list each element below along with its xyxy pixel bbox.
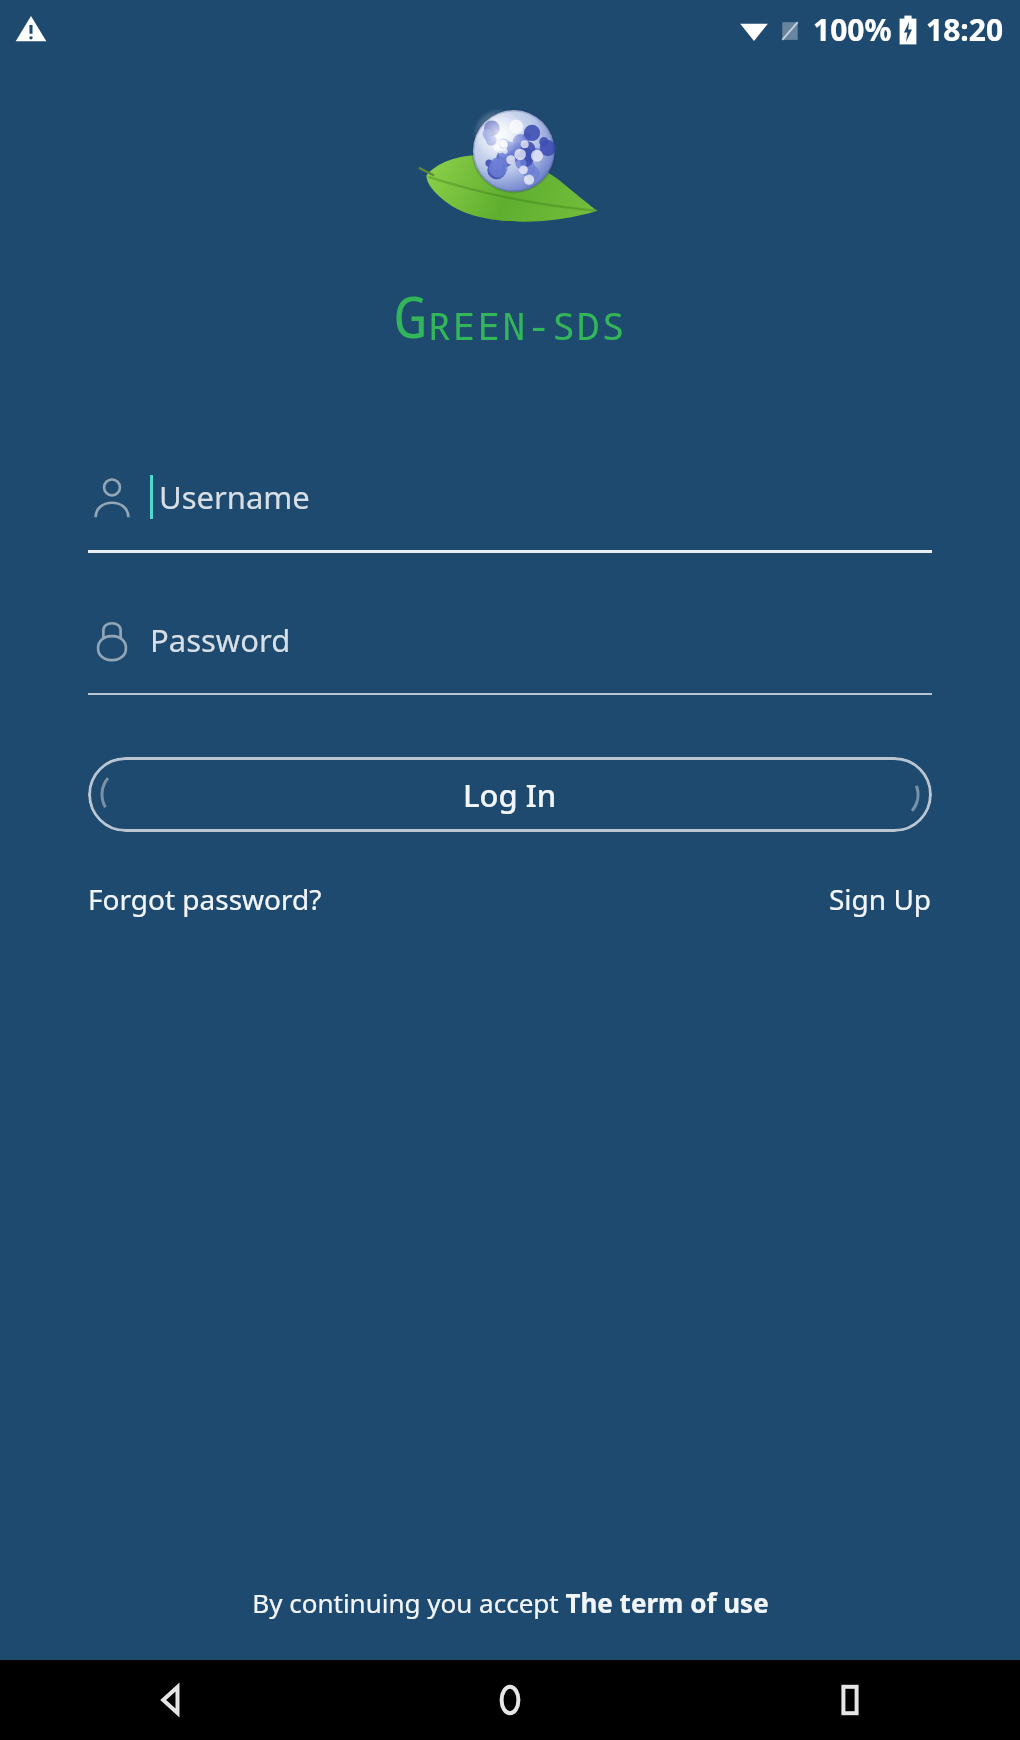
button[interactable]: Back	[0, 1660, 340, 1740]
staticText: 18:20	[926, 9, 1004, 50]
staticText: Username	[159, 476, 310, 518]
staticText: Log In	[463, 774, 557, 816]
staticText: 100%	[813, 9, 892, 50]
staticText: REEN-SDS	[428, 299, 627, 351]
button[interactable]: Home	[340, 1660, 680, 1740]
staticText: Password	[150, 619, 291, 661]
staticText: G	[394, 278, 428, 354]
button[interactable]: Log In	[88, 757, 932, 832]
button[interactable]: Username	[88, 462, 932, 553]
button[interactable]: Password	[88, 605, 932, 695]
staticText: Forgot password?	[88, 880, 322, 918]
staticText: By continuing you accept The term of use	[252, 1585, 769, 1620]
button[interactable]: Forgot password?	[88, 880, 322, 918]
button[interactable]: Recent apps	[680, 1660, 1020, 1740]
staticText: Sign Up	[829, 880, 932, 918]
button[interactable]: By continuing you accept The term of use	[0, 1585, 1020, 1660]
button[interactable]: Sign Up	[829, 880, 932, 918]
